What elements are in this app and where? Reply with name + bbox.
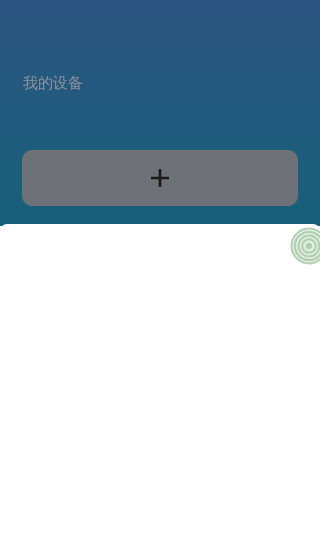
staticText: 我的设备 — [23, 74, 83, 93]
button[interactable]: 添加设备 — [22, 150, 298, 206]
